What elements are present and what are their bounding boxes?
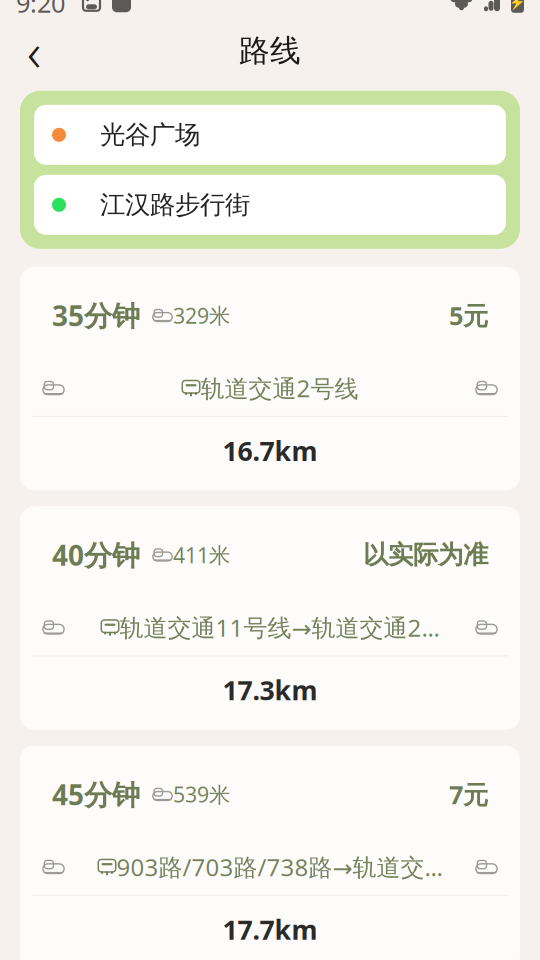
button[interactable]: 江汉路步行街 — [34, 175, 506, 235]
staticText: 539米 — [173, 780, 230, 808]
staticText: 轨道交通11号线→轨道交通2... — [119, 611, 439, 643]
button[interactable]: 35分钟 — [20, 267, 520, 490]
staticText: 5元 — [449, 299, 488, 332]
staticText: 江汉路步行街 — [100, 189, 250, 220]
staticText: 以实际为准 — [363, 539, 488, 570]
staticText: ⚡ — [509, 0, 526, 10]
staticText: 7元 — [449, 777, 488, 811]
staticText: 16.7km — [222, 433, 317, 468]
staticText: 路线 — [239, 32, 301, 70]
staticText: 903路/703路/738路→轨道交... — [116, 851, 442, 883]
staticText: 17.7km — [222, 912, 317, 947]
button[interactable]: 40分钟 — [20, 506, 520, 730]
staticText: ‹ — [27, 15, 41, 86]
staticText: 329米 — [173, 301, 230, 329]
staticText: 40分钟 — [52, 536, 140, 573]
staticText: 17.3km — [222, 672, 317, 708]
staticText: 光谷广场 — [100, 119, 200, 150]
staticText: 9:20 — [16, 0, 65, 20]
button[interactable]: Back — [8, 25, 60, 77]
button[interactable]: 光谷广场 — [34, 105, 506, 165]
staticText: 411米 — [173, 541, 230, 569]
button[interactable]: 45分钟 — [20, 746, 520, 960]
staticText: 45分钟 — [52, 776, 140, 813]
staticText: 35分钟 — [52, 297, 140, 334]
staticText: 轨道交通2号线 — [200, 372, 358, 404]
